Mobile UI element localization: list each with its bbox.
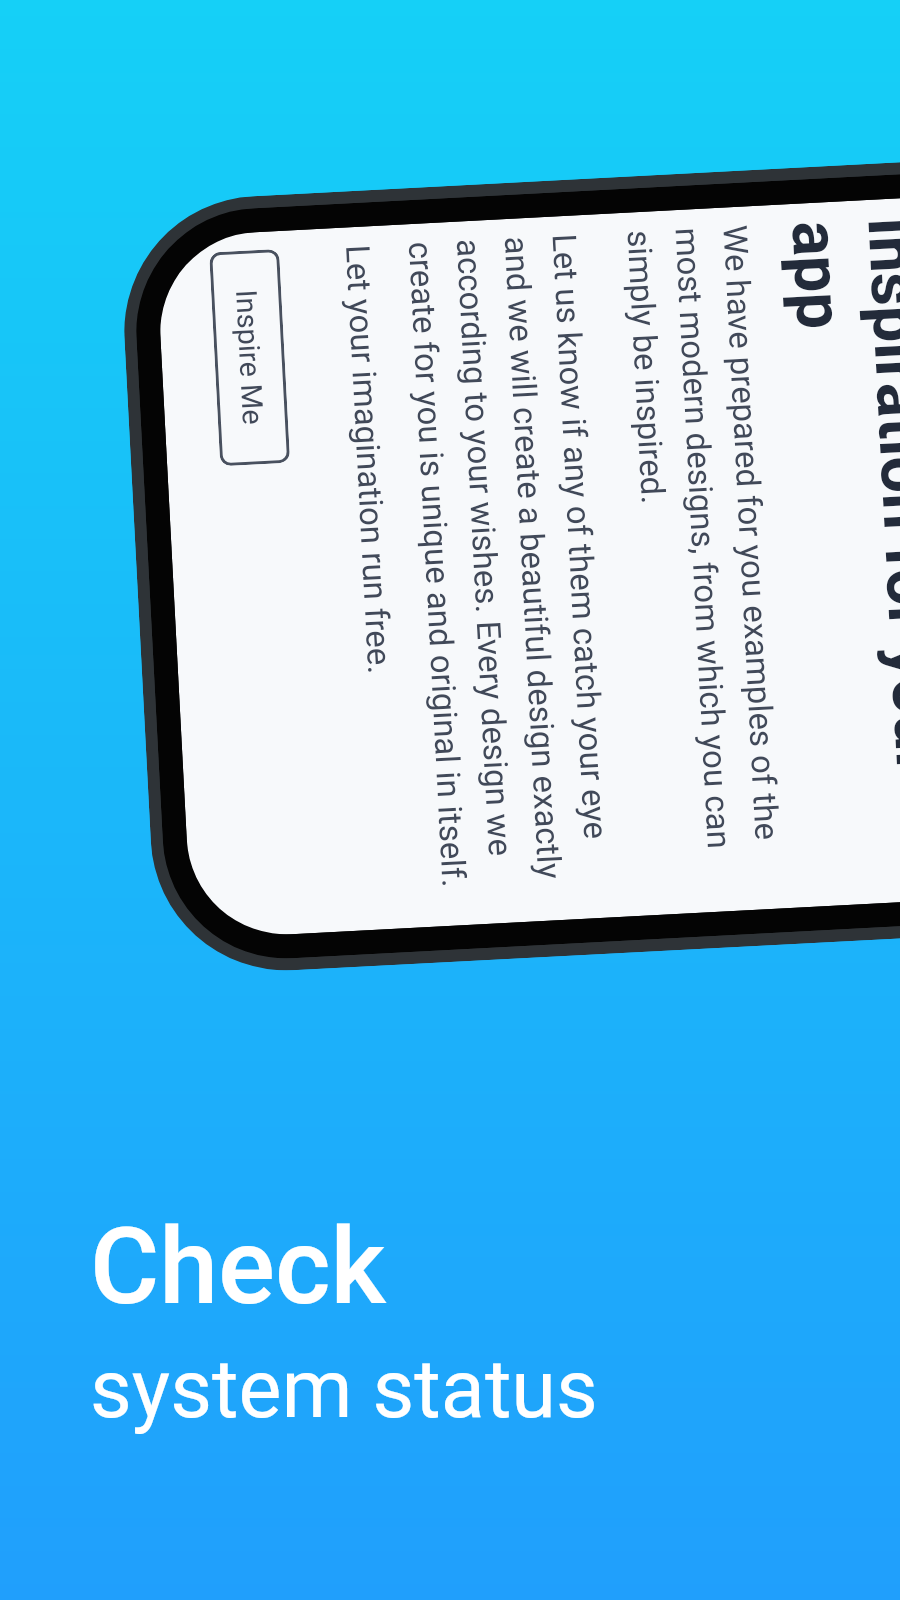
staticText: Let your imagination run free. — [338, 244, 399, 675]
staticText: We have prepared for you examples of the… — [619, 224, 789, 885]
staticText: Let us know if any of them catch your ey… — [401, 233, 618, 897]
staticText: system status — [90, 1342, 598, 1437]
staticText: Inspire Me — [229, 289, 270, 426]
staticText: Check — [90, 1205, 386, 1329]
staticText: Inspiration for your app — [776, 215, 900, 877]
button[interactable]: Inspire Me — [209, 249, 290, 466]
